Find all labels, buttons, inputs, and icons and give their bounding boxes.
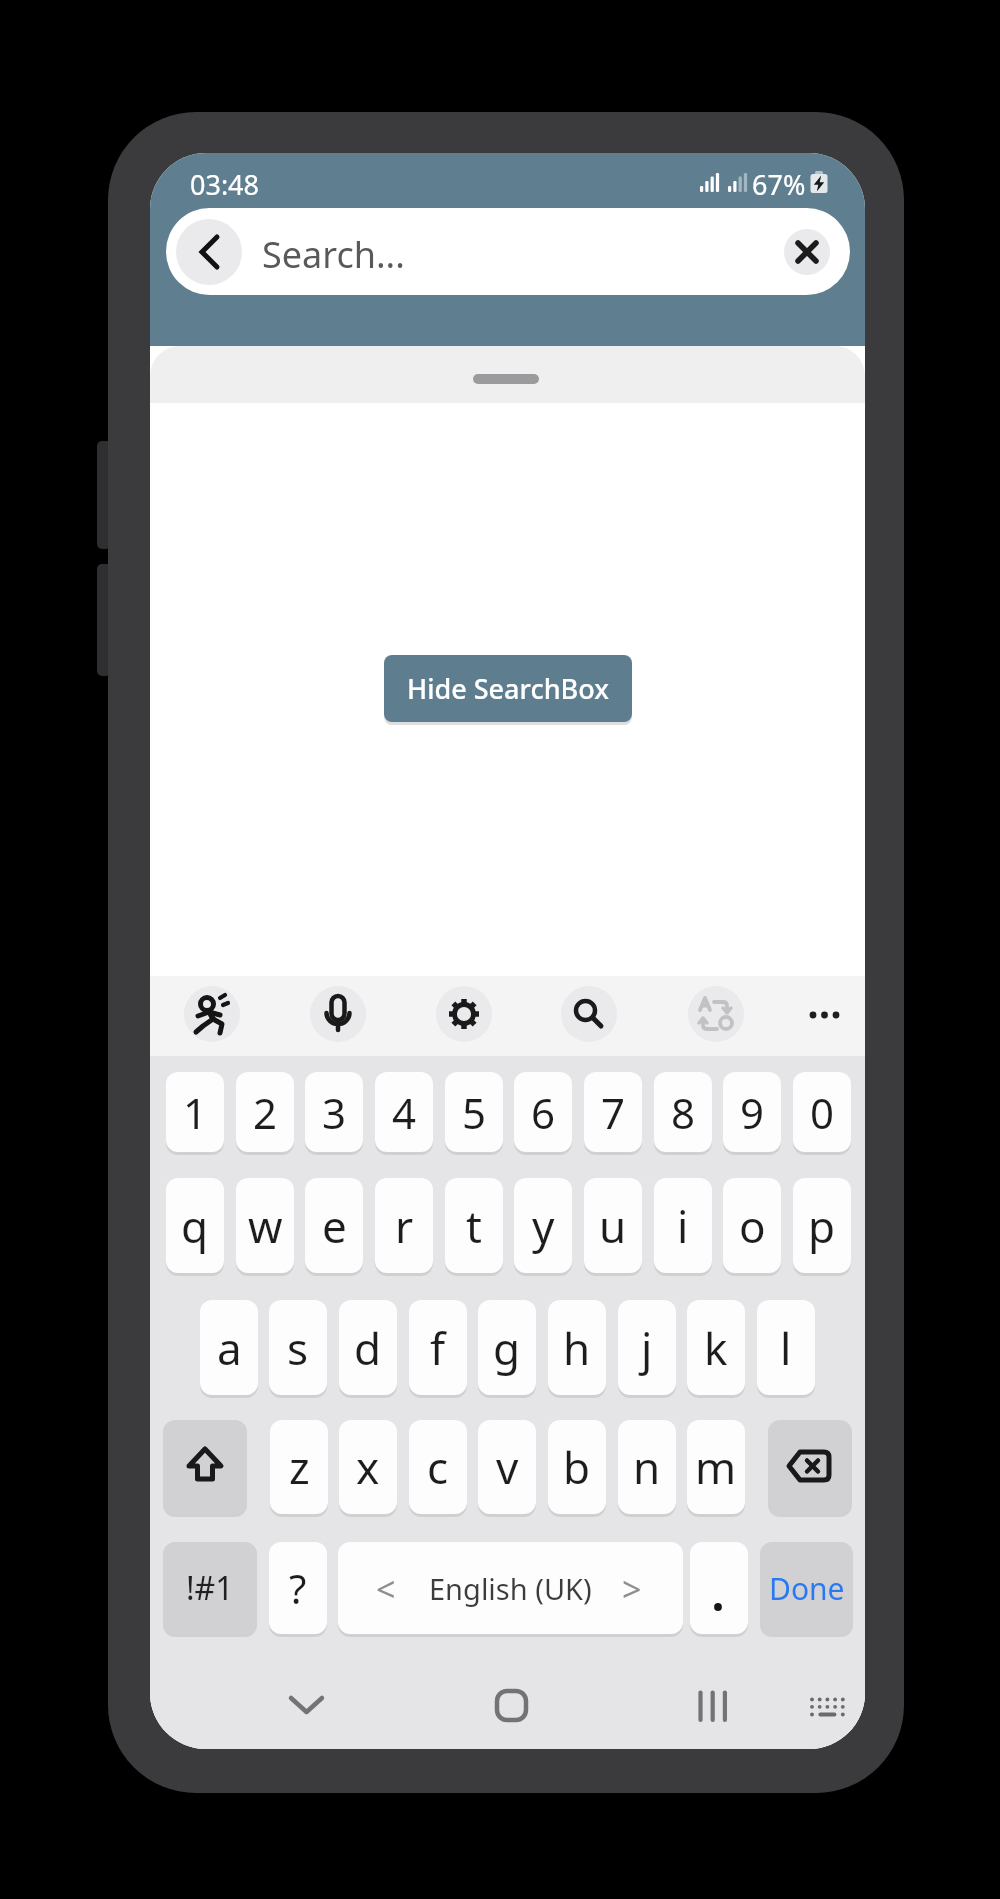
button[interactable]: e: [305, 1178, 363, 1273]
staticText: 4: [392, 1084, 417, 1141]
button[interactable]: [561, 986, 617, 1042]
button[interactable]: d: [339, 1300, 397, 1395]
staticText: p: [808, 1196, 836, 1256]
button[interactable]: o: [723, 1178, 781, 1273]
button[interactable]: z: [270, 1420, 328, 1514]
staticText: 7: [601, 1084, 626, 1141]
button[interactable]: 6: [514, 1072, 572, 1152]
button[interactable]: [163, 1420, 247, 1514]
staticText: l: [780, 1318, 792, 1378]
button[interactable]: r: [375, 1178, 433, 1273]
staticText: m: [695, 1437, 737, 1497]
staticText: English (UK): [429, 1569, 592, 1608]
staticText: t: [466, 1196, 482, 1256]
staticText: k: [704, 1318, 728, 1378]
button[interactable]: v: [478, 1420, 536, 1514]
button[interactable]: Hide SearchBox: [384, 655, 632, 722]
button[interactable]: [804, 1683, 850, 1728]
button[interactable]: m: [687, 1420, 745, 1514]
staticText: 3: [322, 1084, 347, 1141]
staticText: <: [376, 1566, 396, 1610]
button[interactable]: English (UK): [338, 1542, 683, 1634]
button[interactable]: [176, 219, 242, 285]
staticText: f: [430, 1318, 446, 1378]
staticText: e: [322, 1196, 347, 1256]
staticText: ?: [289, 1561, 307, 1615]
staticText: x: [356, 1437, 380, 1497]
staticText: 6: [531, 1084, 556, 1141]
staticText: Done: [769, 1568, 845, 1609]
staticText: s: [287, 1318, 309, 1378]
button[interactable]: c: [409, 1420, 467, 1514]
staticText: >: [622, 1566, 642, 1610]
button[interactable]: [688, 986, 744, 1042]
button[interactable]: [690, 1683, 735, 1728]
button[interactable]: [784, 229, 830, 275]
staticText: o: [739, 1196, 766, 1256]
staticText: n: [633, 1437, 661, 1497]
button[interactable]: y: [514, 1178, 572, 1273]
staticText: 9: [740, 1084, 765, 1141]
staticText: 5: [462, 1084, 487, 1141]
staticText: 1: [183, 1084, 208, 1141]
button[interactable]: x: [339, 1420, 397, 1514]
button[interactable]: Done: [760, 1542, 853, 1634]
staticText: u: [599, 1196, 627, 1256]
staticText: 2: [253, 1084, 278, 1141]
staticText: c: [427, 1437, 449, 1497]
button[interactable]: l: [757, 1300, 815, 1395]
button[interactable]: q: [166, 1178, 224, 1273]
staticText: a: [217, 1318, 242, 1378]
staticText: 8: [671, 1084, 696, 1141]
button[interactable]: [489, 1683, 534, 1728]
button[interactable]: !#1: [163, 1542, 257, 1634]
button[interactable]: j: [618, 1300, 676, 1395]
button[interactable]: k: [687, 1300, 745, 1395]
button[interactable]: [284, 1683, 329, 1728]
button[interactable]: [184, 986, 240, 1042]
staticText: g: [493, 1318, 521, 1378]
button[interactable]: s: [269, 1300, 327, 1395]
staticText: w: [248, 1196, 283, 1256]
staticText: i: [677, 1196, 689, 1256]
button[interactable]: w: [236, 1178, 294, 1273]
button[interactable]: 4: [375, 1072, 433, 1152]
button[interactable]: i: [654, 1178, 712, 1273]
button[interactable]: 8: [654, 1072, 712, 1152]
button[interactable]: 0: [793, 1072, 851, 1152]
button[interactable]: ?: [269, 1542, 327, 1634]
staticText: b: [563, 1437, 591, 1497]
button[interactable]: 3: [305, 1072, 363, 1152]
staticText: q: [181, 1196, 209, 1256]
staticText: 67%: [752, 166, 806, 198]
button[interactable]: p: [793, 1178, 851, 1273]
button[interactable]: 7: [584, 1072, 642, 1152]
button[interactable]: [690, 1542, 748, 1634]
button[interactable]: g: [478, 1300, 536, 1395]
staticText: Search...: [262, 230, 405, 274]
button[interactable]: h: [548, 1300, 606, 1395]
button[interactable]: 2: [236, 1072, 294, 1152]
button[interactable]: n: [618, 1420, 676, 1514]
staticText: z: [289, 1437, 310, 1497]
staticText: v: [496, 1437, 519, 1497]
staticText: j: [641, 1318, 653, 1378]
button[interactable]: b: [548, 1420, 606, 1514]
staticText: Hide SearchBox: [407, 670, 609, 707]
button[interactable]: 1: [166, 1072, 224, 1152]
button[interactable]: f: [409, 1300, 467, 1395]
button[interactable]: [436, 986, 492, 1042]
button[interactable]: [768, 1420, 852, 1514]
button[interactable]: u: [584, 1178, 642, 1273]
button[interactable]: 5: [445, 1072, 503, 1152]
button[interactable]: t: [445, 1178, 503, 1273]
button[interactable]: [798, 986, 854, 1042]
staticText: r: [395, 1196, 414, 1256]
staticText: h: [563, 1318, 591, 1378]
button[interactable]: 9: [723, 1072, 781, 1152]
staticText: !#1: [186, 1566, 234, 1610]
button[interactable]: [166, 208, 850, 295]
staticText: 03:48: [190, 166, 260, 198]
button[interactable]: a: [200, 1300, 258, 1395]
button[interactable]: [310, 986, 366, 1042]
